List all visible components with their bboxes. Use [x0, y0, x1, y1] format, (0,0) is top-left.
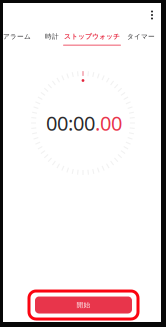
staticText: 00:00 — [46, 109, 95, 137]
button[interactable]: ストップウォッチ — [63, 29, 121, 46]
button[interactable]: More options — [141, 4, 163, 26]
button[interactable]: 開始 — [27, 289, 140, 321]
button[interactable]: 時計 — [45, 29, 59, 43]
staticText: 時計 — [45, 32, 59, 41]
staticText: タイマー — [127, 32, 155, 41]
staticText: 開始 — [76, 301, 90, 309]
staticText: ストップウォッチ — [64, 32, 120, 41]
staticText: アラーム — [3, 32, 31, 41]
staticText: .00 — [95, 109, 122, 137]
button[interactable]: タイマー — [127, 29, 155, 43]
button[interactable]: アラーム — [3, 29, 31, 43]
